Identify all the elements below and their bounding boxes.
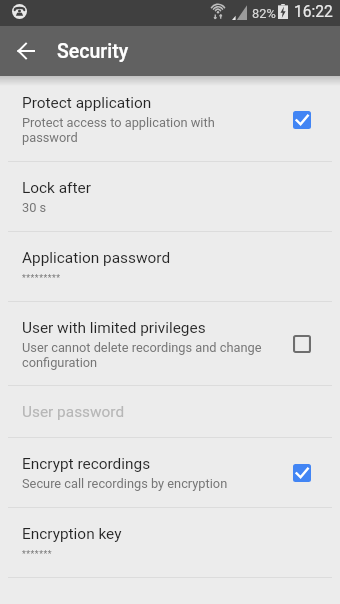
staticText: ********* bbox=[22, 273, 61, 283]
staticText: Protect access to application with passw… bbox=[22, 115, 215, 145]
staticText: Protect application bbox=[22, 94, 152, 112]
staticText: User cannot delete recordings and change… bbox=[22, 340, 262, 370]
staticText: Secure call recordings by encryption bbox=[22, 476, 228, 491]
staticText: Lock after bbox=[22, 179, 91, 197]
staticText: 16:22 bbox=[294, 3, 333, 21]
button[interactable]: Encryption key bbox=[0, 508, 340, 578]
staticText: Security bbox=[57, 40, 129, 63]
button[interactable]: Protect application bbox=[0, 77, 340, 162]
staticText: Application password bbox=[22, 249, 171, 267]
staticText: 30 s bbox=[22, 200, 47, 215]
button[interactable]: User password bbox=[0, 386, 340, 438]
button[interactable]: Application password bbox=[0, 232, 340, 302]
staticText: User password bbox=[22, 403, 125, 421]
staticText: Encrypt recordings bbox=[22, 455, 151, 473]
staticText: ******* bbox=[22, 549, 53, 559]
staticText: Encryption key bbox=[22, 525, 122, 543]
button[interactable]: User with limited privileges bbox=[0, 302, 340, 386]
staticText: User with limited privileges bbox=[22, 319, 206, 337]
button[interactable]: Lock after bbox=[0, 162, 340, 232]
staticText: 82% bbox=[252, 6, 276, 21]
button[interactable]: Back bbox=[0, 26, 52, 76]
button[interactable]: Encrypt recordings bbox=[0, 438, 340, 508]
